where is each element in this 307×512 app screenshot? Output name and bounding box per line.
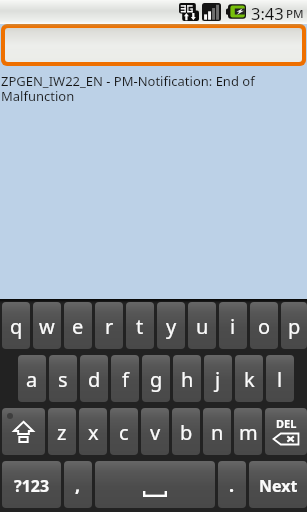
button[interactable]: w — [33, 302, 61, 349]
button[interactable]: i — [219, 302, 247, 349]
button[interactable]: f — [111, 355, 139, 402]
button[interactable]: p — [281, 302, 307, 349]
staticText: e — [72, 313, 84, 340]
button[interactable]: d — [80, 355, 108, 402]
staticText: x — [88, 419, 99, 446]
staticText: w — [39, 313, 55, 340]
staticText: y — [166, 313, 177, 340]
staticText: o — [258, 313, 271, 340]
staticText: v — [150, 419, 161, 446]
button[interactable]: Space — [95, 461, 215, 508]
staticText: q — [10, 313, 23, 340]
button[interactable]: x — [79, 408, 107, 455]
staticText: h — [181, 366, 194, 393]
button[interactable]: j — [204, 355, 232, 402]
button[interactable]: r — [95, 302, 123, 349]
button[interactable]: g — [142, 355, 170, 402]
staticText: 3:43 — [251, 2, 284, 21]
staticText: DEL — [276, 416, 297, 431]
button[interactable]: h — [173, 355, 201, 402]
button[interactable]: q — [2, 302, 30, 349]
staticText: ?123 — [14, 475, 50, 497]
staticText: Next — [259, 475, 298, 497]
button[interactable]: , — [64, 461, 92, 508]
staticText: PM — [286, 6, 304, 22]
button[interactable]: k — [235, 355, 263, 402]
button[interactable]: Delete — [265, 408, 307, 455]
staticText: j — [215, 366, 221, 393]
button[interactable]: n — [203, 408, 231, 455]
button[interactable]: o — [250, 302, 278, 349]
staticText: f — [122, 366, 129, 393]
staticText: l — [277, 366, 283, 393]
button[interactable]: y — [157, 302, 185, 349]
button[interactable]: Next — [249, 461, 307, 508]
button[interactable]: b — [172, 408, 200, 455]
staticText: n — [211, 419, 224, 446]
staticText: c — [119, 419, 129, 446]
button[interactable] — [5, 28, 302, 62]
staticText: a — [26, 366, 38, 393]
staticText: t — [136, 313, 144, 340]
button[interactable]: a — [18, 355, 46, 402]
button[interactable]: e — [64, 302, 92, 349]
staticText: z — [57, 419, 67, 446]
button[interactable]: s — [49, 355, 77, 402]
staticText: i — [230, 313, 236, 340]
staticText: s — [58, 366, 68, 393]
staticText: d — [88, 366, 101, 393]
button[interactable]: v — [141, 408, 169, 455]
staticText: p — [288, 313, 301, 340]
staticText: ZPGEN_IW22_EN - PM-Notification: End of … — [1, 72, 267, 105]
staticText: r — [105, 313, 114, 340]
staticText: b — [180, 419, 193, 446]
button[interactable]: m — [234, 408, 262, 455]
button[interactable]: Shift — [2, 408, 45, 455]
button[interactable]: c — [110, 408, 138, 455]
staticText: m — [239, 419, 258, 446]
button[interactable]: z — [48, 408, 76, 455]
button[interactable]: l — [266, 355, 294, 402]
staticText: . — [229, 473, 235, 498]
button[interactable]: t — [126, 302, 154, 349]
staticText: k — [244, 366, 255, 393]
button[interactable]: u — [188, 302, 216, 349]
button[interactable]: ?123 — [2, 461, 61, 508]
button[interactable]: . — [218, 461, 246, 508]
staticText: u — [196, 313, 209, 340]
staticText: , — [75, 473, 81, 498]
staticText: g — [150, 366, 163, 393]
